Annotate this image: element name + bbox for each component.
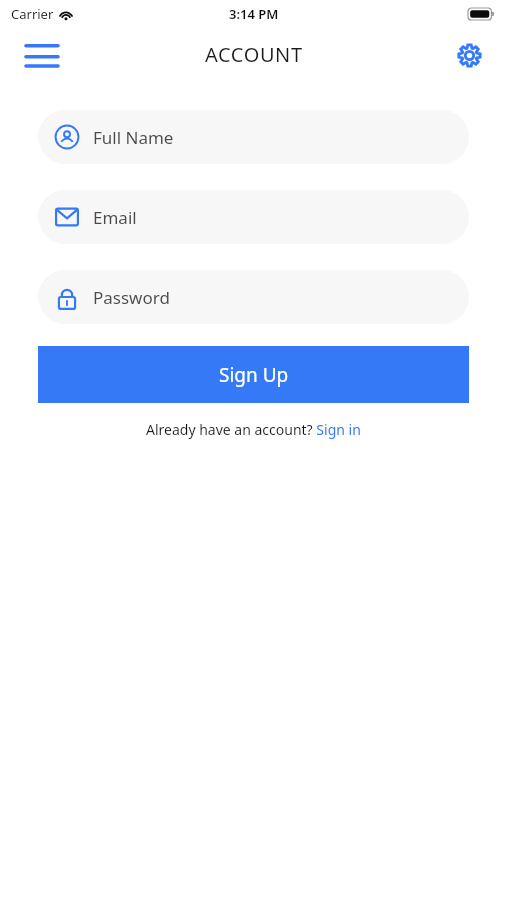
staticText: Carrier xyxy=(11,5,54,23)
button[interactable]: Email xyxy=(38,190,469,244)
button[interactable]: Already have an account? Sign in xyxy=(146,420,361,439)
button[interactable]: Settings xyxy=(447,33,491,77)
button[interactable]: Full Name xyxy=(38,110,469,164)
staticText: Password xyxy=(93,286,170,309)
staticText: Already have an account? Sign in xyxy=(146,420,361,439)
staticText: 3:14 PM xyxy=(229,5,279,23)
staticText: Sign Up xyxy=(219,362,289,388)
staticText: Email xyxy=(93,206,137,229)
staticText: Full Name xyxy=(93,126,174,149)
button[interactable]: Password xyxy=(38,270,469,324)
staticText: ACCOUNT xyxy=(205,41,303,68)
button[interactable]: Sign Up xyxy=(38,346,469,403)
button[interactable]: Menu xyxy=(18,31,66,79)
